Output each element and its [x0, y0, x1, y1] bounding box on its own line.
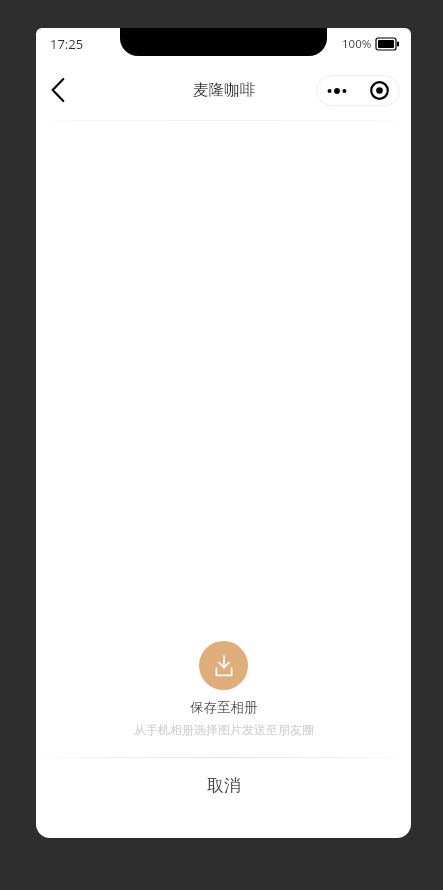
staticText: 麦隆咖啡	[193, 80, 255, 100]
staticText: 取消	[207, 775, 241, 796]
staticText: 17:25	[50, 35, 84, 53]
button[interactable]: 取消	[36, 758, 411, 812]
button[interactable]: 保存至相册	[36, 641, 411, 737]
staticText: 从手机相册选择图片发送至朋友圈	[134, 722, 314, 737]
button[interactable]: Close	[358, 75, 400, 106]
button[interactable]: More options	[316, 75, 358, 106]
staticText: 100%	[342, 36, 372, 52]
staticText: 保存至相册	[190, 699, 258, 716]
button[interactable]: Back	[36, 68, 80, 112]
